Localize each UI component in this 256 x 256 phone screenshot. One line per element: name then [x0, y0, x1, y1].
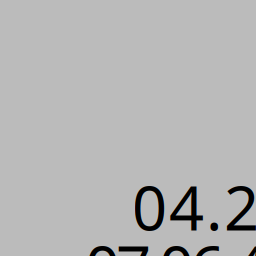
staticText: 04.21 — [132, 166, 256, 247]
staticText: 07.06.4 — [85, 226, 256, 256]
